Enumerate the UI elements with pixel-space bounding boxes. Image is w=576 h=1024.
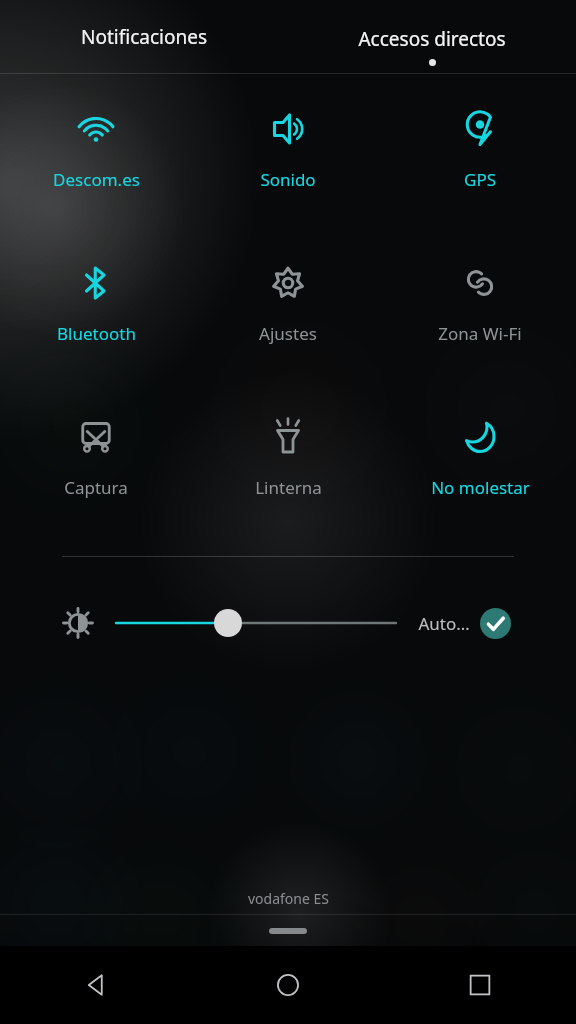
- button[interactable]: Sonido: [192, 96, 384, 214]
- button[interactable]: Descom.es: [0, 96, 192, 214]
- button[interactable]: Back: [0, 946, 192, 1024]
- button[interactable]: Auto…: [418, 608, 511, 639]
- staticText: Captura: [64, 476, 128, 499]
- button[interactable]: Bluetooth: [0, 250, 192, 368]
- staticText: Notificaciones: [81, 24, 207, 50]
- button[interactable]: Brightness: [56, 601, 100, 645]
- staticText: vodafone ES: [248, 889, 329, 908]
- button[interactable]: Drag handle: [0, 915, 576, 946]
- staticText: Descom.es: [53, 168, 140, 191]
- button[interactable]: Recents: [384, 946, 576, 1024]
- staticText: Auto…: [418, 612, 470, 635]
- staticText: Zona Wi-Fi: [438, 322, 522, 345]
- staticText: Linterna: [255, 476, 322, 499]
- button[interactable]: Notificaciones: [0, 0, 288, 74]
- button[interactable]: Linterna: [192, 404, 384, 522]
- button[interactable]: Ajustes: [192, 250, 384, 368]
- button[interactable]: Zona Wi-Fi: [384, 250, 576, 368]
- staticText: Sonido: [260, 168, 316, 191]
- staticText: Ajustes: [259, 322, 317, 345]
- button[interactable]: Accesos directos: [288, 0, 576, 74]
- staticText: Bluetooth: [57, 322, 136, 345]
- staticText: Accesos directos: [358, 26, 506, 52]
- button[interactable]: Brightness slider: [116, 601, 396, 645]
- button[interactable]: GPS: [384, 96, 576, 214]
- staticText: No molestar: [431, 476, 530, 499]
- staticText: GPS: [464, 168, 496, 191]
- button[interactable]: Captura: [0, 404, 192, 522]
- button[interactable]: No molestar: [384, 404, 576, 522]
- button[interactable]: Home: [192, 946, 384, 1024]
